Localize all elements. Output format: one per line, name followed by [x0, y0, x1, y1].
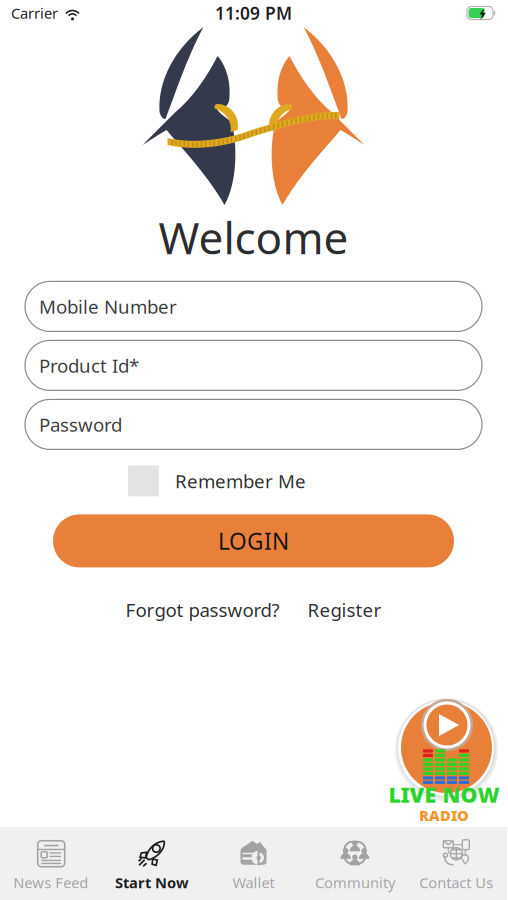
staticText: 11:09 PM — [215, 1, 292, 24]
staticText: News Feed — [13, 873, 88, 892]
button[interactable]: Mobile Number — [25, 281, 482, 331]
button[interactable]: Community — [304, 827, 406, 900]
staticText: Product Id* — [39, 353, 139, 378]
staticText: Wallet — [232, 873, 274, 892]
staticText: Forgot password? — [125, 597, 279, 622]
staticText: Remember Me — [175, 468, 306, 493]
staticText: Community — [315, 873, 395, 892]
button[interactable]: Start Now — [101, 827, 203, 900]
button[interactable]: News Feed — [0, 827, 101, 900]
staticText: Contact Us — [419, 873, 493, 892]
button[interactable]: Password — [25, 399, 482, 449]
button[interactable]: Contact Us — [406, 827, 507, 900]
staticText: Password — [39, 412, 122, 437]
staticText: Welcome — [158, 208, 348, 266]
button[interactable]: LOGIN — [53, 514, 454, 567]
staticText: Mobile Number — [39, 294, 177, 319]
button[interactable]: Product Id* — [25, 340, 482, 390]
staticText: Start Now — [115, 873, 189, 892]
button[interactable]: Forgot password? — [125, 597, 279, 622]
button[interactable]: Live Now Radio — [393, 697, 499, 803]
button[interactable]: Wallet — [203, 827, 304, 900]
staticText: LIVE NOW — [388, 780, 499, 808]
staticText: LOGIN — [218, 526, 289, 556]
staticText: Register — [307, 597, 381, 622]
staticText: RADIO — [419, 805, 469, 825]
staticText: Carrier — [11, 3, 58, 23]
button[interactable]: Register — [307, 597, 381, 622]
